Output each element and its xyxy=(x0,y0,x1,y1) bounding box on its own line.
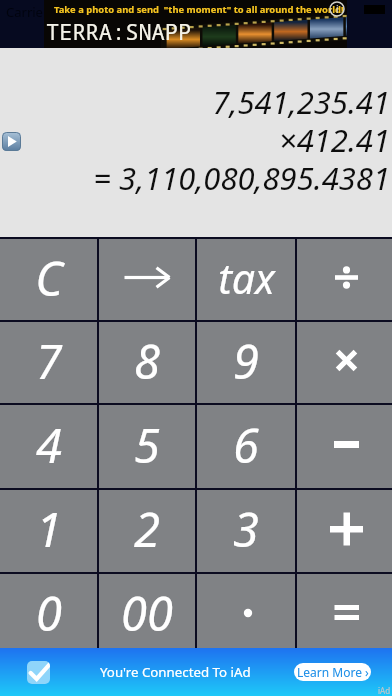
button[interactable]: 4 xyxy=(0,405,97,488)
button[interactable]: C xyxy=(0,239,97,320)
button[interactable]: 6 xyxy=(197,405,295,488)
staticText: i xyxy=(336,2,339,16)
staticText: 3 xyxy=(233,497,259,561)
button[interactable]: Multiply xyxy=(297,322,392,403)
button[interactable]: tax xyxy=(197,239,295,320)
button[interactable]: 7 xyxy=(0,322,97,403)
staticText: Carrier xyxy=(6,3,49,21)
button[interactable]: Learn More › xyxy=(294,663,371,681)
button[interactable]: Play xyxy=(2,132,21,151)
staticText: iAd xyxy=(378,685,391,696)
staticText: 6 xyxy=(233,413,259,477)
staticText: C xyxy=(35,246,63,310)
button[interactable]: Backspace xyxy=(99,239,195,320)
staticText: You're Connected To iAd xyxy=(100,663,251,681)
button[interactable]: 5 xyxy=(99,405,195,488)
staticText: tax xyxy=(218,250,275,306)
button[interactable]: Minus xyxy=(297,405,392,488)
button[interactable]: You're Connected To iAd xyxy=(0,648,392,696)
button[interactable]: Ad info xyxy=(329,1,345,17)
button[interactable]: 2 xyxy=(99,490,195,572)
button[interactable]: 9 xyxy=(197,322,295,403)
button[interactable]: 1 xyxy=(0,490,97,572)
button[interactable]: Equals xyxy=(297,574,392,656)
staticText: 9 xyxy=(233,329,259,393)
staticText: 00 xyxy=(121,581,173,645)
button[interactable]: Divide xyxy=(297,239,392,320)
staticText: 4 xyxy=(36,413,62,477)
button[interactable]: Plus xyxy=(297,490,392,572)
staticText: 2 xyxy=(134,497,160,561)
staticText: 1 xyxy=(36,497,62,561)
button[interactable]: 00 xyxy=(99,574,195,656)
staticText: TERRA:SNAPP xyxy=(46,16,192,46)
button[interactable]: Decimal point xyxy=(197,574,295,656)
button[interactable]: 3 xyxy=(197,490,295,572)
button[interactable]: 0 xyxy=(0,574,97,656)
button[interactable]: 8 xyxy=(99,322,195,403)
staticText: Take a photo and send "the moment" to al… xyxy=(54,3,357,16)
staticText: Learn More › xyxy=(297,664,369,680)
staticText: 5 xyxy=(134,413,160,477)
staticText: 8 xyxy=(134,329,160,393)
staticText: 0 xyxy=(36,581,62,645)
staticText: 7,541,235.41 ×412.41 = 3,110,080,895.438… xyxy=(93,81,390,199)
staticText: 7 xyxy=(36,329,62,393)
button[interactable]: Take a photo and send "the moment" to al… xyxy=(44,0,347,48)
